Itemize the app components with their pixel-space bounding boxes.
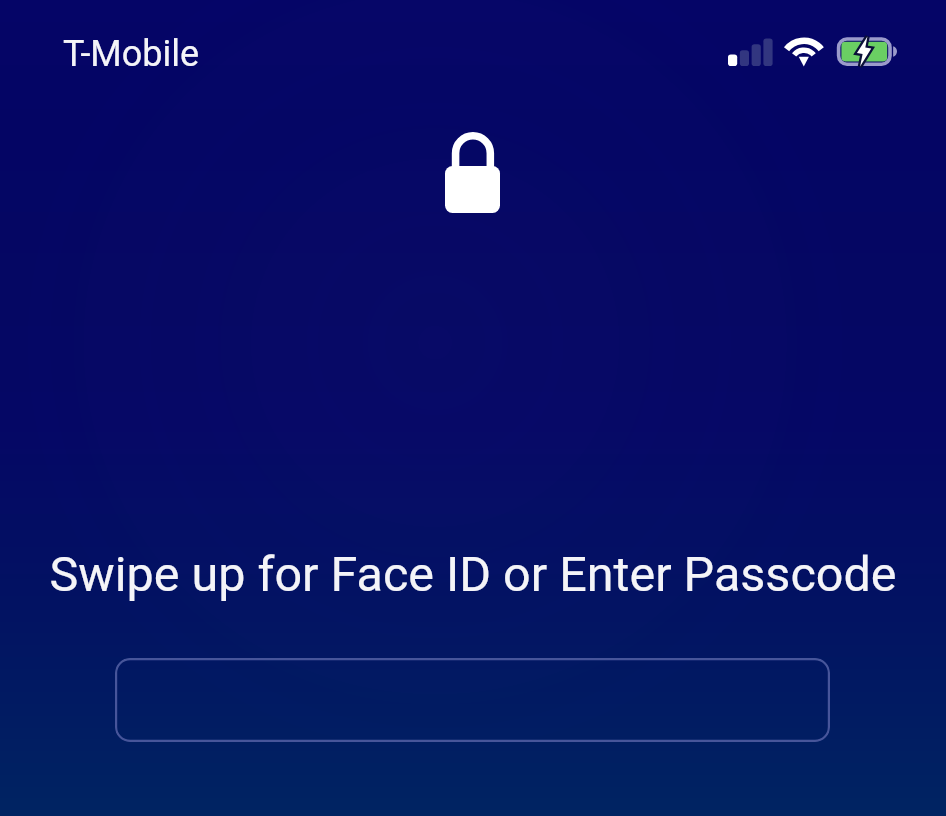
button[interactable]: Swipe up to unlock — [0, 0, 946, 816]
other: Wi-Fi — [784, 35, 826, 69]
other: Device locked — [444, 131, 502, 215]
button[interactable]: Enter Passcode — [115, 658, 830, 742]
button[interactable]: Swipe up for Face ID or Enter Passcode — [0, 546, 946, 603]
other: Cellular signal — [728, 36, 774, 66]
staticText: Swipe up for Face ID or Enter Passcode — [0, 546, 946, 603]
other: Battery charging — [835, 35, 901, 69]
staticText: T-Mobile — [63, 33, 200, 75]
